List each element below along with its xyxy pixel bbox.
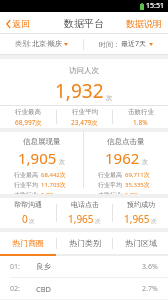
staticText: 行业平均 (72, 108, 98, 116)
staticText: 1.8% (133, 118, 148, 127)
staticText: 02: (10, 284, 20, 294)
staticText: 帮帮沟通 (14, 200, 42, 209)
staticText: 2.7% (142, 284, 158, 294)
button[interactable]: 电话点击 (57, 198, 112, 228)
staticText: 击败行业 (128, 108, 154, 116)
staticText: 次 (59, 158, 65, 166)
staticText: 北京·顺庆 (32, 39, 62, 49)
staticText: 行业最高 (98, 171, 122, 179)
staticText: 68,442次 (41, 171, 66, 179)
staticText: 热门商圈 (12, 238, 44, 248)
button[interactable]: 信息展现量 (0, 132, 83, 194)
staticText: 次 (106, 94, 113, 102)
button[interactable]: 01: (0, 256, 168, 277)
staticText: 次 (29, 218, 35, 225)
staticText: 次 (142, 158, 148, 166)
button[interactable]: 返回 (0, 14, 36, 33)
staticText: 1.8% (125, 191, 139, 194)
button[interactable]: 时间： (84, 34, 168, 54)
staticText: 信息点击量 (107, 137, 145, 146)
staticText: 1,932 (55, 78, 104, 104)
button[interactable]: 热门区域 (113, 232, 168, 254)
button[interactable]: 信息点击量 (84, 132, 168, 194)
staticText: 预约成功 (127, 200, 155, 209)
staticText: 电话点击 (71, 200, 99, 209)
staticText: 类别: (15, 39, 31, 49)
staticText: 11,703次 (41, 181, 66, 189)
staticText: 1,905 (18, 148, 57, 168)
staticText: 1,965 (124, 212, 150, 226)
staticText: 15:51 (146, 1, 164, 11)
staticText: 访问人次 (69, 66, 99, 75)
staticText: 01: (10, 262, 20, 272)
staticText: 次 (95, 218, 101, 225)
button[interactable]: 击败行业 (113, 106, 168, 128)
staticText: 1.8% (41, 191, 55, 194)
staticText: 68,997次 (15, 118, 42, 127)
staticText: 次 (151, 218, 157, 225)
button[interactable]: 热门商圈 (0, 232, 56, 254)
staticText: 0 (22, 212, 28, 226)
button[interactable]: 热门类别 (57, 232, 112, 254)
staticText: 最近7天 (121, 39, 147, 49)
button[interactable]: 数据说明 (120, 14, 168, 33)
button[interactable]: 行业平均 (57, 106, 112, 128)
staticText: 1,965 (68, 212, 94, 226)
staticText: 数据说明 (126, 18, 162, 29)
staticText: 良乡 (36, 262, 51, 271)
staticText: 时间： (99, 40, 120, 49)
staticText: 3.6% (142, 262, 158, 272)
staticText: 信息展现量 (23, 137, 61, 146)
staticText: 69,711次 (125, 171, 150, 179)
button[interactable]: 帮帮沟通 (0, 198, 56, 228)
staticText: 热门区域 (125, 238, 157, 248)
button[interactable]: 行业最高 (0, 106, 56, 128)
staticText: 23,479次 (71, 118, 98, 127)
staticText: 行业最高 (15, 108, 41, 116)
staticText: 击败行业 (14, 191, 38, 194)
staticText: 35,335次 (125, 181, 150, 189)
staticText: 返回 (12, 18, 30, 29)
staticText: 行业平均 (14, 181, 38, 189)
staticText: 行业最高 (14, 171, 38, 179)
button[interactable]: 类别: (0, 34, 83, 54)
button[interactable]: 预约成功 (113, 198, 168, 228)
staticText: 热门类别 (69, 238, 101, 248)
button[interactable]: 02: (0, 278, 168, 299)
staticText: 1962 (105, 148, 140, 168)
staticText: 击败行业 (98, 191, 122, 194)
staticText: CBD (36, 284, 52, 294)
staticText: 行业平均 (98, 181, 122, 189)
staticText: 数据平台 (64, 17, 104, 30)
